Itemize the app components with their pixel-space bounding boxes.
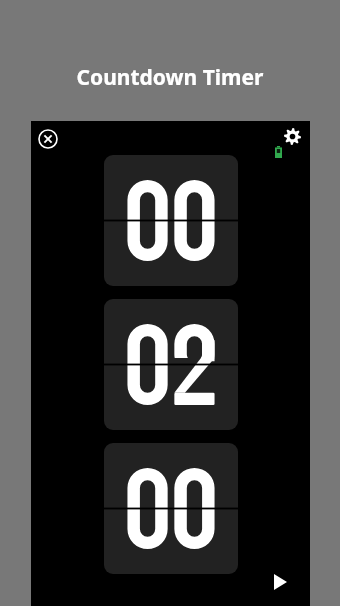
button[interactable]: [104, 299, 238, 430]
button[interactable]: [104, 443, 238, 574]
button[interactable]: Start: [265, 567, 295, 597]
button[interactable]: Close: [37, 128, 59, 150]
staticText: Countdown Timer: [0, 63, 340, 92]
button[interactable]: [104, 155, 238, 286]
button[interactable]: Settings: [283, 127, 302, 146]
